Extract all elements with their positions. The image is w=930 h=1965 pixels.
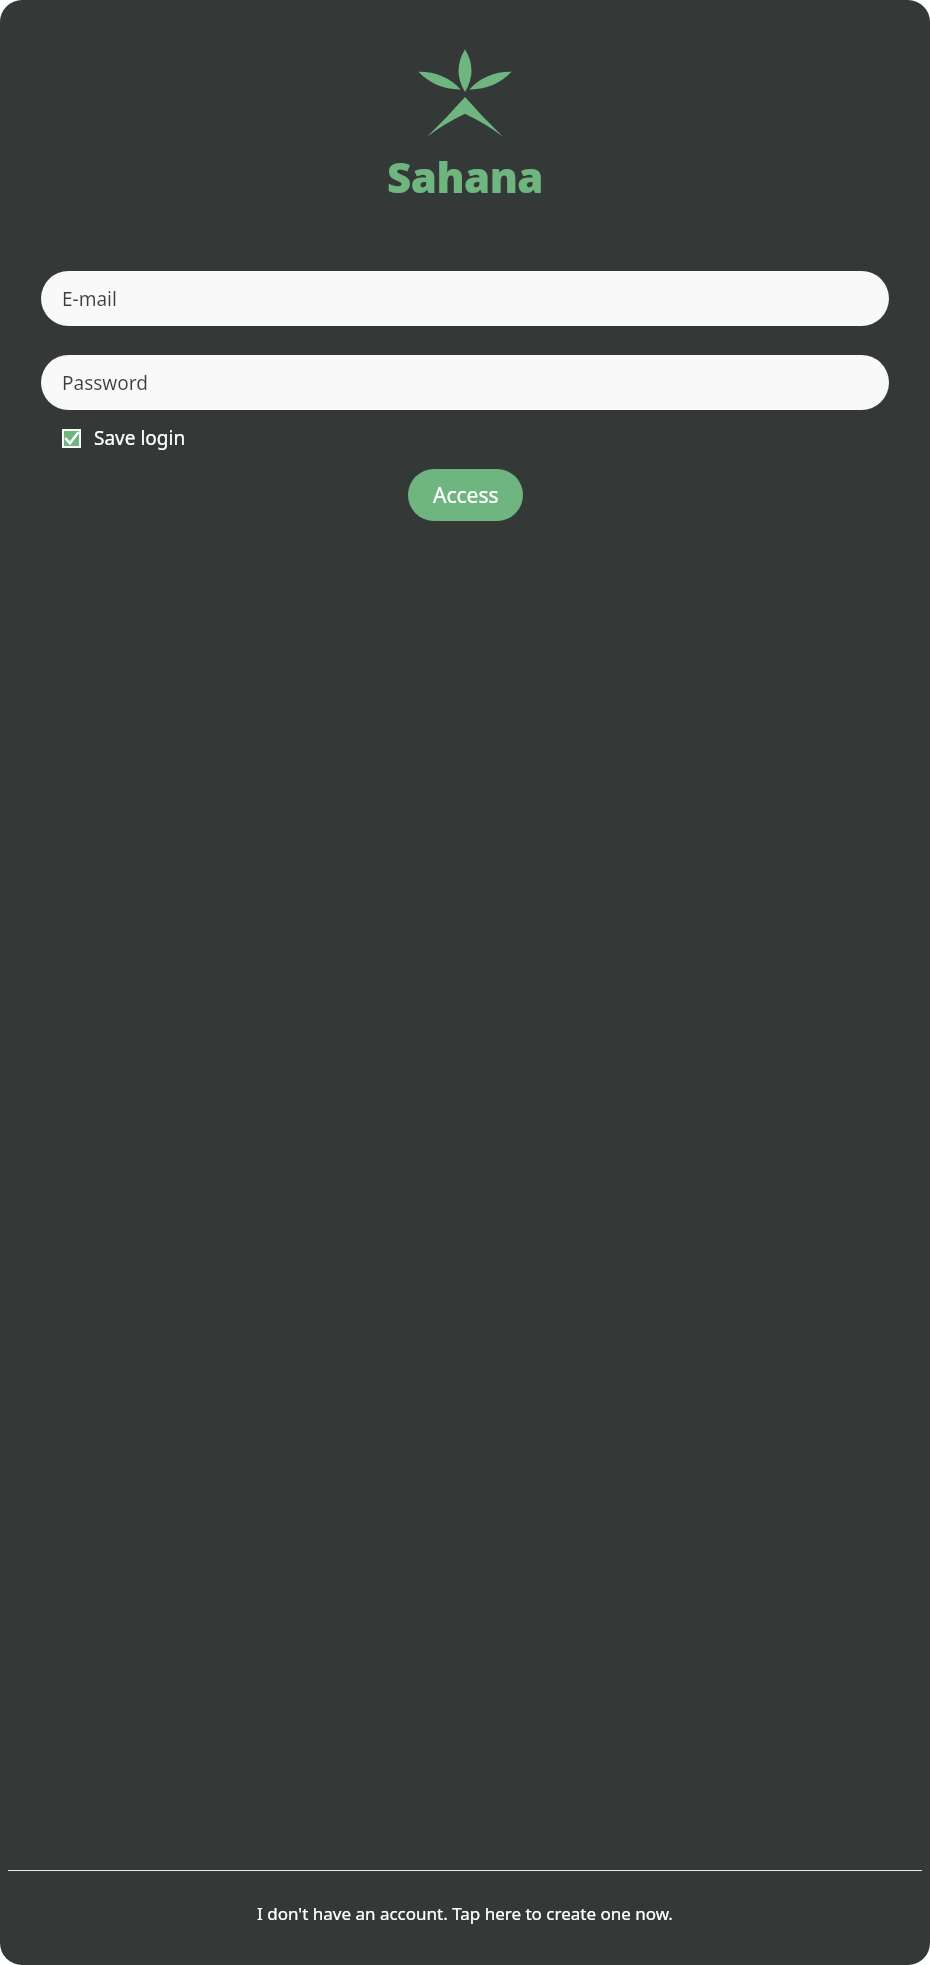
button[interactable]: Access [408, 469, 523, 521]
staticText: Password [62, 370, 148, 396]
staticText: Access [433, 481, 499, 510]
button[interactable]: I don't have an account. Tap here to cre… [0, 1898, 930, 1929]
staticText: E-mail [62, 286, 117, 312]
staticText: Sahana [387, 148, 544, 205]
button[interactable]: Password [41, 355, 889, 410]
button[interactable]: E-mail [41, 271, 889, 326]
button[interactable]: Save login [60, 421, 188, 455]
staticText: Save login [94, 425, 186, 451]
staticText: I don't have an account. Tap here to cre… [257, 1902, 673, 1925]
